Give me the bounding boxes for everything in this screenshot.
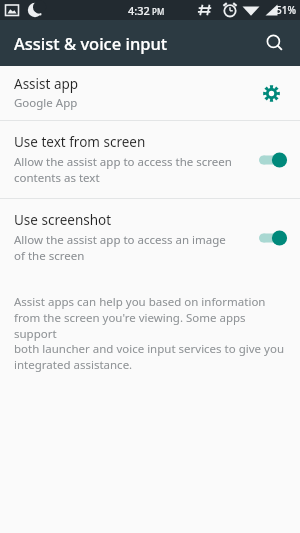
button[interactable]: Use screenshot [0,199,300,276]
staticText: Allow the assist app to access the scree… [14,154,232,170]
button[interactable]: Assist app [0,66,300,120]
staticText: Assist apps can help you based on inform… [14,294,266,310]
button[interactable]: Use screenshot [257,225,287,251]
staticText: from the screen you're viewing. Some app… [14,310,286,341]
staticText: 4:32 [128,3,150,18]
staticText: Assist & voice input [14,32,168,54]
staticText: Allow the assist app to access an image [14,232,226,248]
button[interactable]: Search [258,26,292,60]
staticText: contents as text [14,170,100,186]
staticText: 51% [276,3,296,17]
staticText: Google App [14,95,78,111]
staticText: PM [152,6,165,17]
staticText: integrated assistance. [14,357,133,373]
button[interactable]: Use text from screen [257,147,287,173]
staticText: Use screenshot [14,211,112,229]
staticText: Assist app [14,75,79,93]
button[interactable]: Use text from screen [0,121,300,198]
staticText: both launcher and voice input services t… [14,341,284,357]
staticText: Use text from screen [14,133,146,151]
button[interactable]: Assist app settings [254,76,288,110]
staticText: of the screen [14,248,85,264]
